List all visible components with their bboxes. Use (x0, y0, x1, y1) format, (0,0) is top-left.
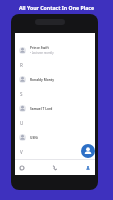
staticText: All Your Contact In One Place (0, 4, 113, 11)
staticText: Ronaldy Monty (30, 78, 54, 82)
button[interactable]: Contacts (85, 160, 91, 175)
button[interactable]: Prince Swift (15, 42, 95, 59)
staticText: USNi (30, 136, 38, 140)
staticText: Prince Swift (30, 46, 49, 50)
button[interactable]: Samuel T Lord (15, 100, 95, 117)
staticText: Samuel T Lord (30, 107, 53, 111)
staticText: U (20, 120, 24, 126)
button[interactable]: USNi (15, 129, 95, 146)
staticText: V (20, 149, 23, 155)
staticText: S (20, 91, 23, 97)
staticText: • Last seen recently (30, 51, 54, 55)
button[interactable]: Ronaldy Monty (15, 71, 95, 88)
staticText: R (20, 62, 23, 68)
button[interactable]: Recent (19, 160, 25, 175)
button[interactable]: Calls (52, 160, 58, 175)
button[interactable]: Add contact (81, 144, 95, 158)
